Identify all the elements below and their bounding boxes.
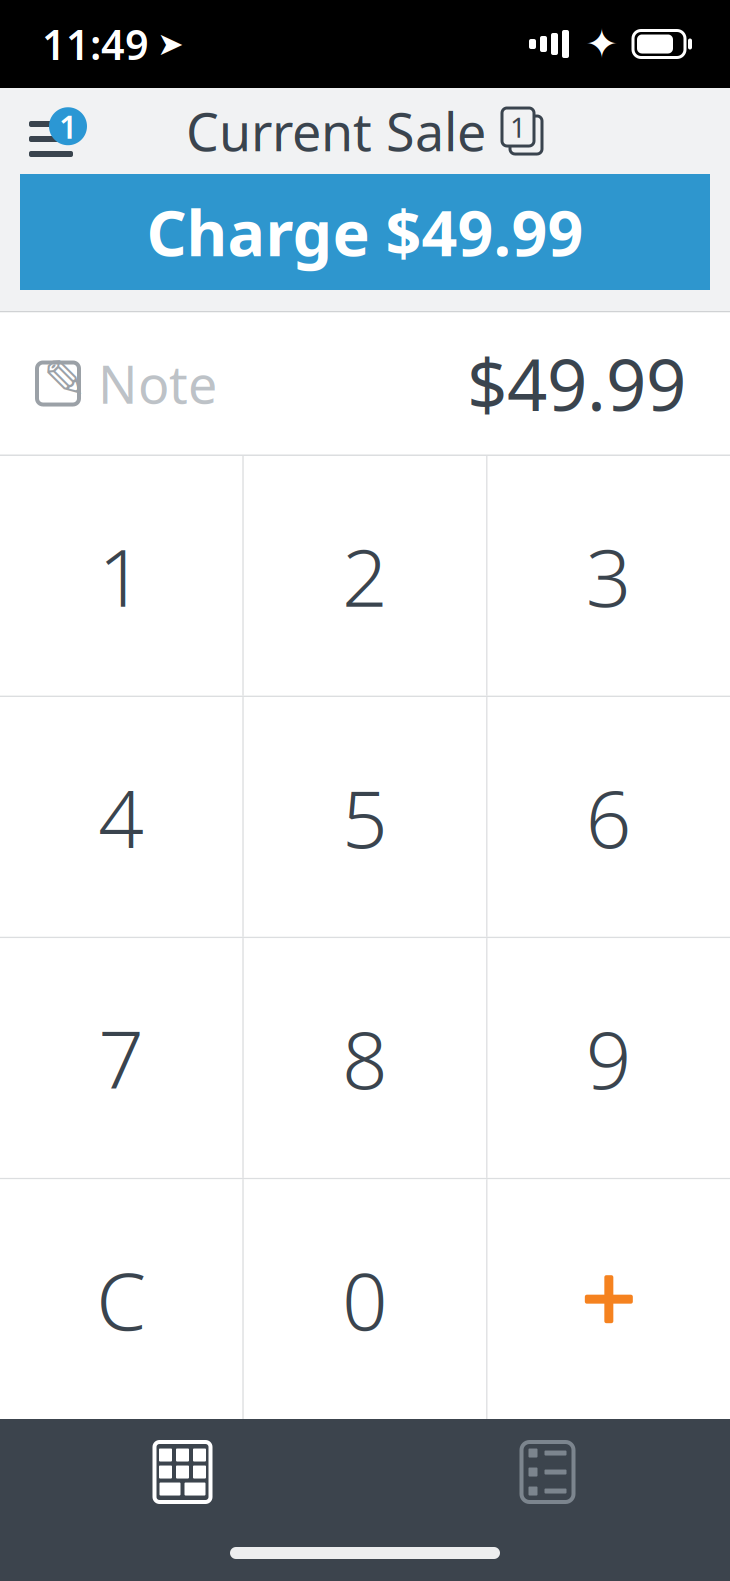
button[interactable]: Current Sale [174,88,556,174]
button[interactable]: Add item [488,1179,730,1419]
button[interactable]: Item library [365,1427,730,1517]
staticText: Note [98,349,217,418]
staticText: 8 [342,1005,388,1111]
staticText: 11:49 [42,17,149,71]
button[interactable]: 4 [0,697,242,937]
button[interactable]: 0 [244,1179,486,1419]
button[interactable]: ✎ [0,312,730,454]
staticText: 4 [98,764,144,870]
button[interactable]: Menu, 1 open sale [0,93,102,169]
button[interactable]: 9 [488,938,730,1178]
button[interactable]: C [0,1179,242,1419]
button[interactable]: 5 [244,697,486,937]
staticText: ✦ [585,21,619,67]
staticText: 1 [59,105,77,147]
staticText: 0 [342,1246,388,1352]
staticText: 5 [342,764,388,870]
button[interactable]: 6 [488,697,730,937]
staticText: ✎ [42,349,87,410]
staticText: 9 [586,1005,632,1111]
button[interactable]: Charge $49.99 [20,174,710,290]
staticText: ➤ [157,26,184,62]
staticText: 1 [510,108,526,146]
staticText: 2 [342,523,388,629]
staticText: 7 [98,1005,144,1111]
staticText: 6 [586,764,632,870]
button[interactable]: Keypad [0,1427,365,1517]
staticText: Charge $49.99 [146,190,583,274]
button[interactable]: 1 [0,456,242,696]
staticText: 3 [586,523,632,629]
staticText: 1 [98,523,144,629]
button[interactable]: 2 [244,456,486,696]
button[interactable]: 3 [488,456,730,696]
staticText: $49.99 [467,337,686,430]
button[interactable]: 8 [244,938,486,1178]
button[interactable]: 7 [0,938,242,1178]
staticText: Current Sale [186,96,486,166]
staticText: C [96,1246,146,1352]
